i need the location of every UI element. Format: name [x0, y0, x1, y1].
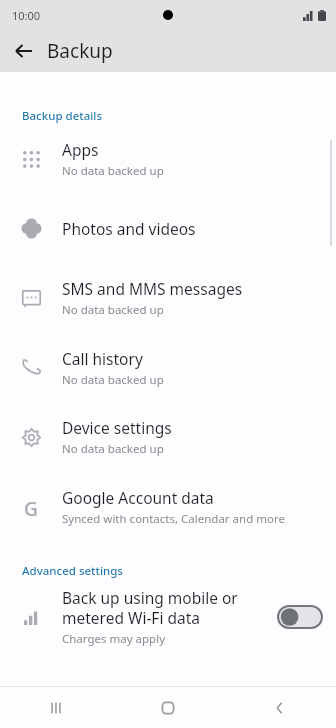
staticText: Google Account data	[62, 487, 214, 508]
button[interactable]: Apps	[0, 124, 336, 194]
staticText: Back up using mobile or metered Wi-Fi da…	[62, 587, 272, 628]
button[interactable]: Device settings	[0, 402, 336, 472]
button[interactable]: Back	[224, 687, 336, 728]
staticText: Advanced settings	[22, 563, 123, 579]
staticText: Call history	[62, 348, 143, 369]
staticText: SMS and MMS messages	[62, 278, 243, 299]
button[interactable]: Back up using mobile or metered Wi-Fi da…	[0, 579, 336, 655]
button[interactable]: G	[0, 472, 336, 541]
staticText: Apps	[62, 139, 99, 160]
button[interactable]: Back	[8, 35, 40, 67]
button[interactable]: Photos and videos	[0, 194, 336, 263]
staticText: G	[24, 496, 38, 518]
staticText: Charges may apply	[62, 631, 166, 647]
staticText: Synced with contacts, Calendar and more	[62, 511, 285, 527]
staticText: No data backed up	[62, 302, 164, 318]
staticText: Device settings	[62, 417, 172, 438]
staticText: No data backed up	[62, 372, 164, 388]
button[interactable]: SMS and MMS messages	[0, 263, 336, 333]
button[interactable]: Home	[112, 687, 224, 728]
staticText: Backup details	[22, 108, 103, 124]
staticText: Photos and videos	[62, 218, 196, 239]
staticText: No data backed up	[62, 441, 164, 457]
button[interactable]: Back up using mobile data toggle	[278, 606, 322, 628]
button[interactable]: Call history	[0, 333, 336, 402]
staticText: No data backed up	[62, 163, 164, 179]
staticText: Backup	[47, 38, 113, 64]
staticText: 10:00	[12, 8, 41, 23]
button[interactable]: Recents	[0, 687, 112, 728]
